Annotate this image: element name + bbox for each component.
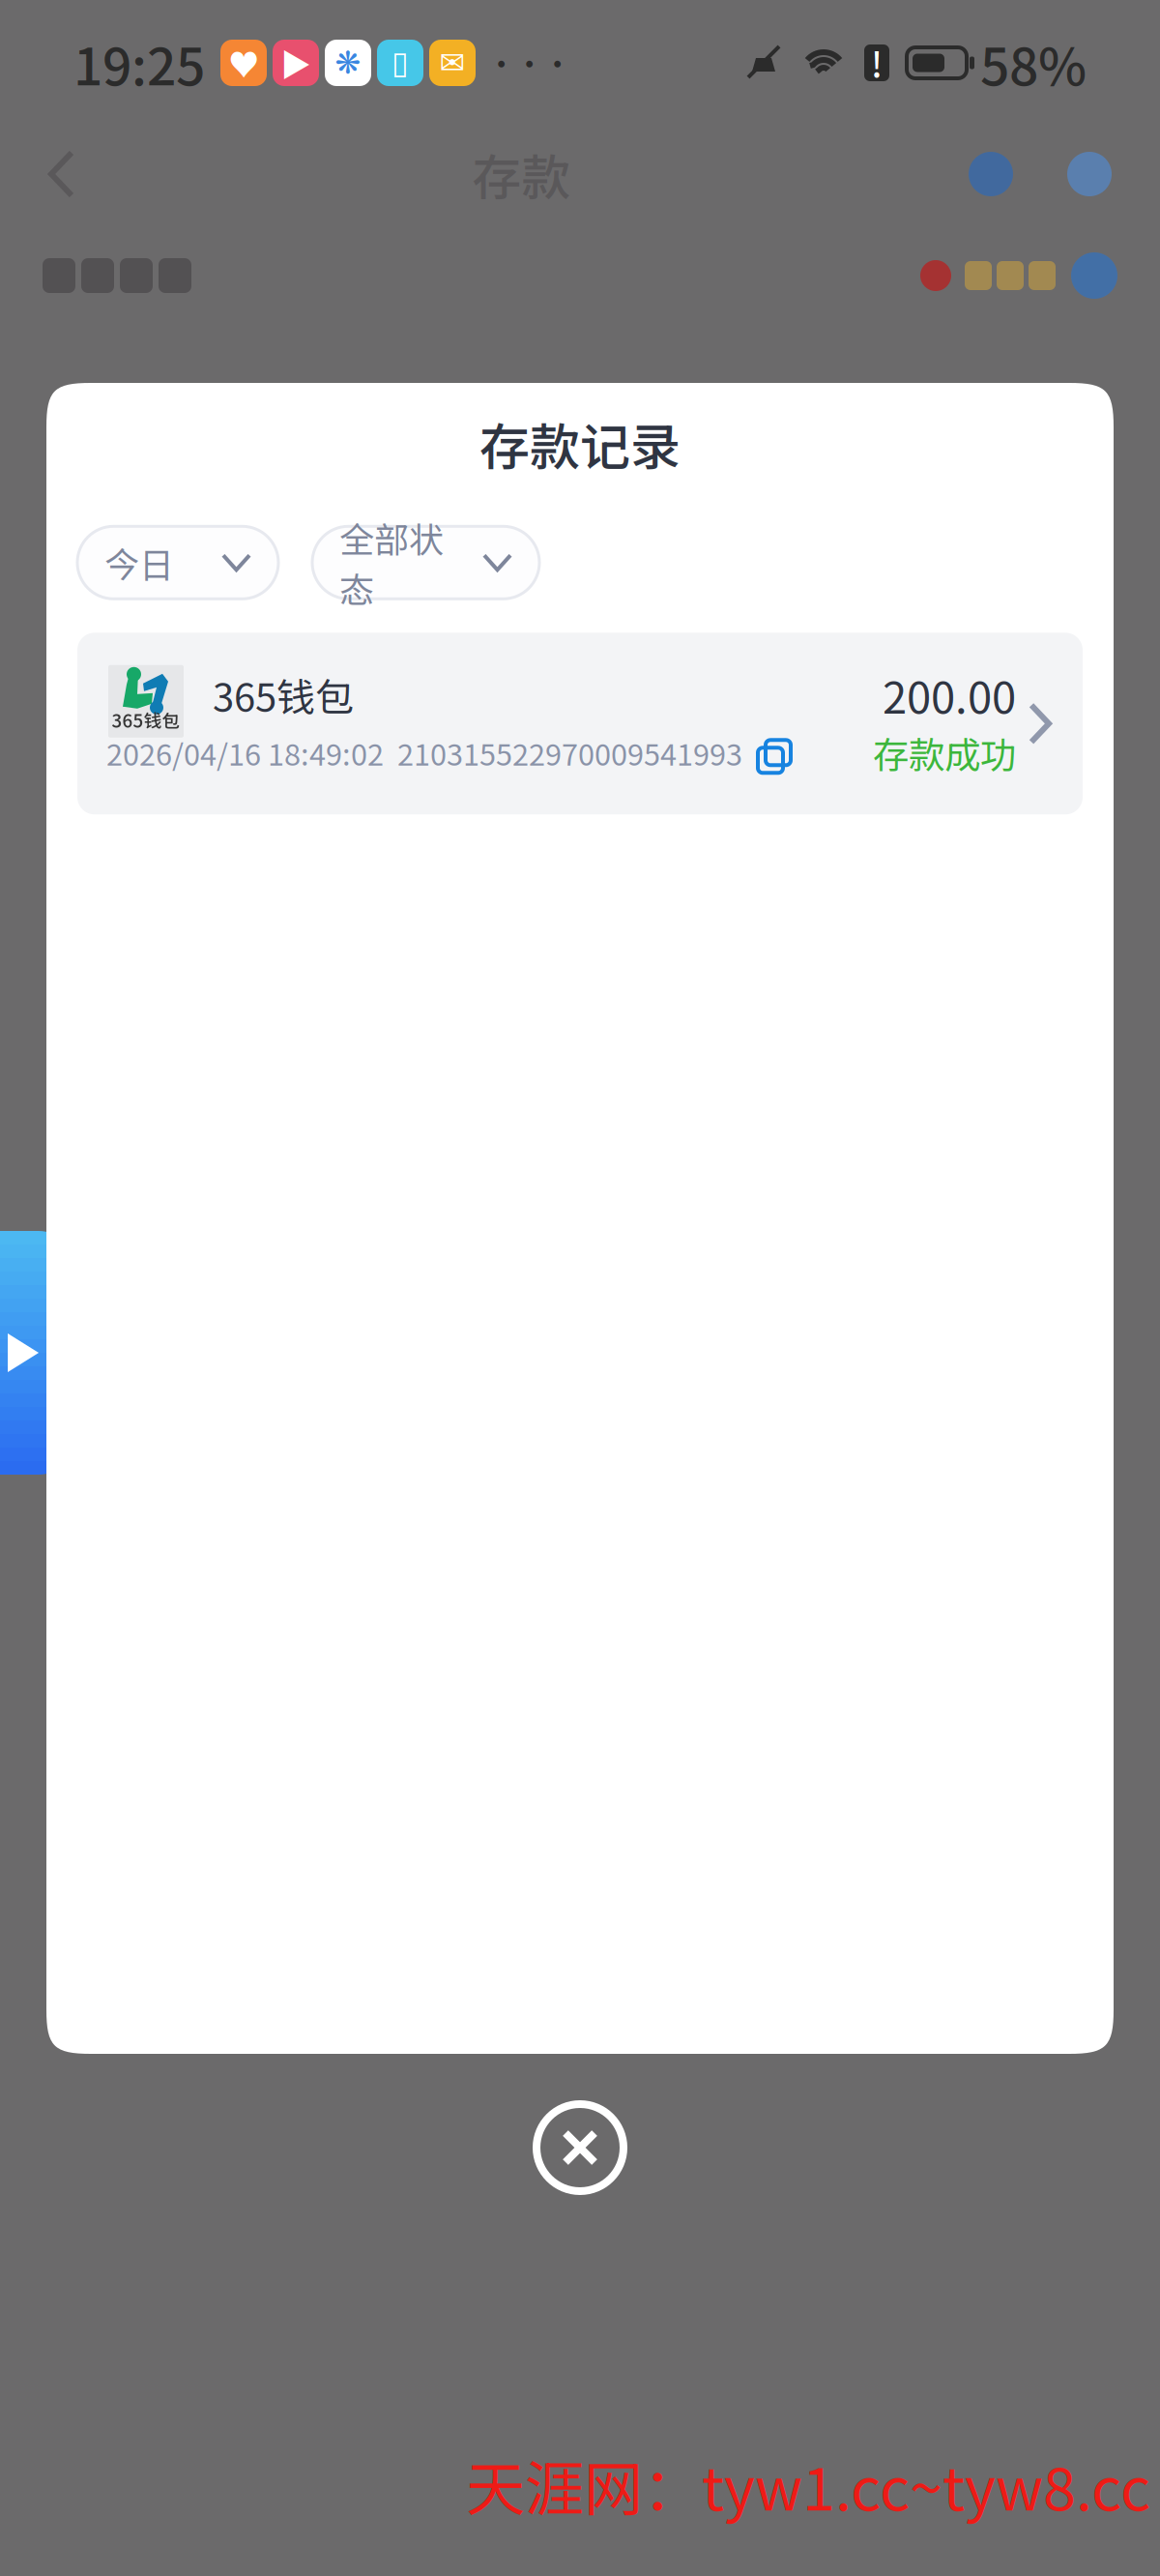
button[interactable]: 今日 [77, 526, 278, 599]
staticText: 天涯网：tyw1.cc~tyw8.cc [466, 2442, 1150, 2528]
staticText: ✉ [439, 45, 465, 81]
staticText: 今日 [104, 537, 174, 588]
staticText: 存款成功 [873, 726, 1016, 779]
staticText: ▶ [280, 40, 311, 85]
staticText: 全部状态 [339, 512, 444, 613]
button[interactable]: 365钱包 [77, 633, 1083, 814]
staticText: 365钱包 [213, 667, 354, 723]
staticText: 存款 [472, 139, 571, 210]
staticText: 200.00 [883, 663, 1016, 726]
staticText: ▯ [391, 45, 409, 81]
button[interactable]: Close [522, 2090, 638, 2206]
staticText: 19:25 [73, 26, 205, 100]
button[interactable]: Expand panel [0, 1231, 73, 1475]
staticText: ••• [487, 42, 571, 83]
staticText: 存款记录 [479, 407, 681, 480]
staticText: 58% [980, 26, 1087, 100]
staticText: 365钱包 [112, 707, 180, 733]
staticText: ♥ [228, 40, 259, 85]
staticText: ❋ [335, 45, 361, 81]
staticText: ! [871, 39, 883, 87]
button[interactable]: 全部状态 [312, 526, 539, 599]
staticText: 2026/04/16 18:49:02 21031552297000954199… [106, 731, 742, 774]
